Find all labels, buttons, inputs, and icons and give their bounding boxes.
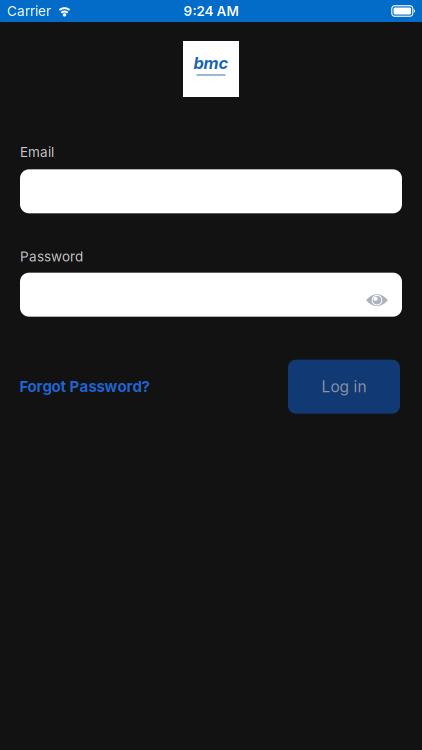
staticText: Forgot Password? (19, 378, 149, 396)
button[interactable]: Show password (366, 288, 388, 301)
button[interactable]: Forgot Password? (19, 378, 149, 396)
staticText: Password (20, 248, 83, 265)
staticText: Email (20, 144, 54, 160)
staticText: bmc (193, 53, 228, 73)
button[interactable]: Log in (288, 360, 400, 414)
staticText: Carrier (7, 3, 51, 19)
staticText: Log in (321, 377, 366, 396)
staticText: 9:24 AM (183, 3, 238, 19)
